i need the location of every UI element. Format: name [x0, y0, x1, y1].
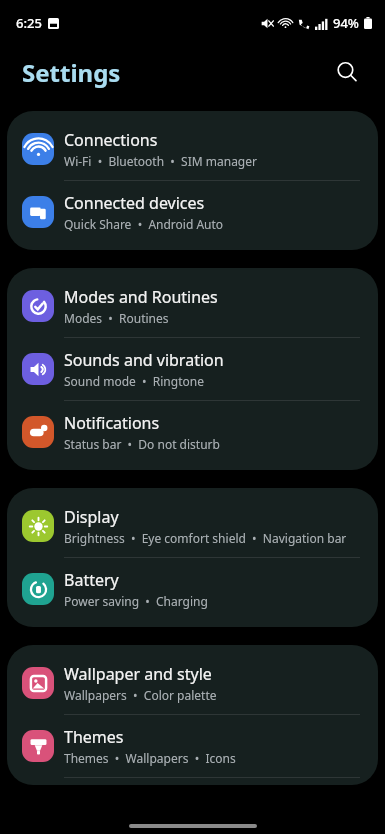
button[interactable]: Modes and Routines — [7, 275, 378, 337]
button[interactable]: Notifications — [7, 401, 378, 463]
staticText: Status bar • Do not disturb — [64, 436, 220, 452]
staticText: Sound mode • Ringtone — [64, 373, 204, 389]
button[interactable]: Connected devices — [7, 181, 378, 243]
staticText: Settings — [22, 56, 121, 89]
button[interactable]: Search — [327, 52, 367, 92]
staticText: Notifications — [64, 412, 160, 434]
staticText: Connections — [64, 129, 158, 151]
button[interactable]: Connections — [7, 118, 378, 180]
button[interactable]: Sounds and vibration — [7, 338, 378, 400]
staticText: Power saving • Charging — [64, 593, 208, 609]
staticText: Themes • Wallpapers • Icons — [64, 750, 236, 766]
staticText: Modes and Routines — [64, 286, 218, 308]
staticText: Brightness • Eye comfort shield • Naviga… — [64, 530, 347, 546]
staticText: Themes — [64, 726, 124, 748]
staticText: Display — [64, 506, 119, 528]
button[interactable]: Battery — [7, 558, 378, 620]
staticText: Wi-Fi • Bluetooth • SIM manager — [64, 153, 257, 169]
staticText: Quick Share • Android Auto — [64, 216, 224, 232]
button[interactable]: Wallpaper and style — [7, 652, 378, 714]
staticText: Wallpapers • Color palette — [64, 687, 217, 703]
staticText: Sounds and vibration — [64, 349, 224, 371]
button[interactable]: Display — [7, 495, 378, 557]
staticText: Wallpaper and style — [64, 663, 212, 685]
staticText: Connected devices — [64, 192, 205, 214]
staticText: 6:25 — [16, 14, 42, 32]
button[interactable]: Themes — [7, 715, 378, 777]
staticText: Modes • Routines — [64, 310, 169, 326]
staticText: Battery — [64, 569, 119, 591]
staticText: 94% — [333, 14, 359, 32]
